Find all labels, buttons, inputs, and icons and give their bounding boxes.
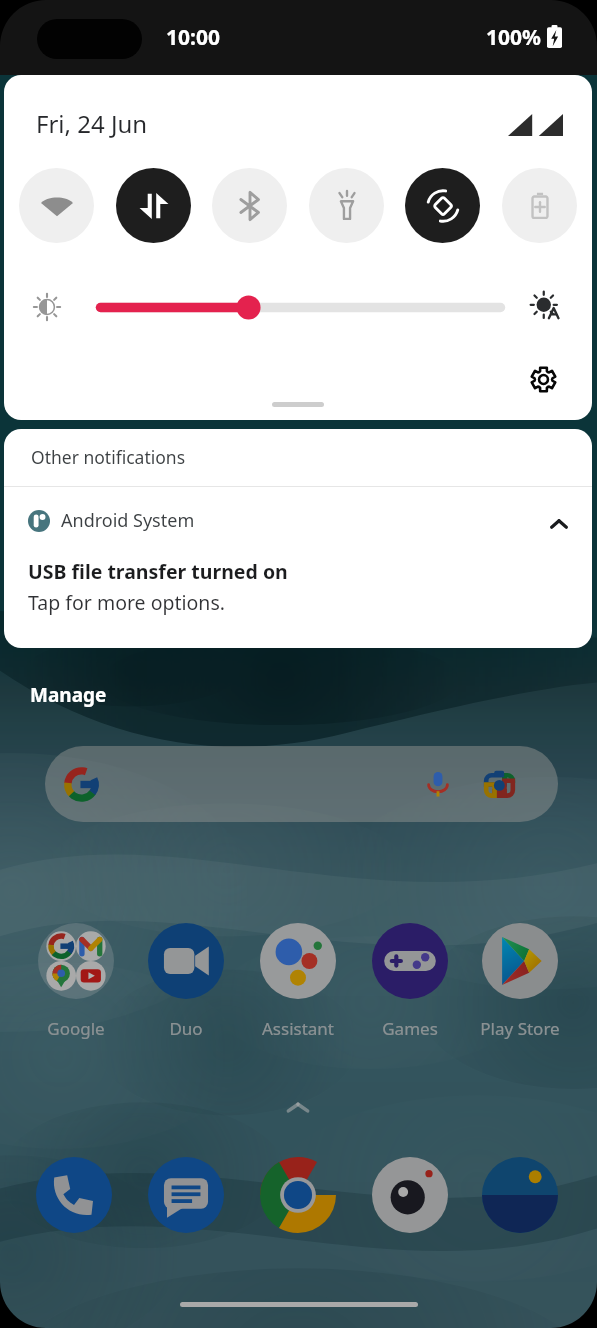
staticText: Tap for more options. xyxy=(28,589,225,616)
staticText: USB file transfer turned on xyxy=(28,558,288,585)
button[interactable]: Google xyxy=(26,923,126,1040)
button[interactable]: Assistant xyxy=(248,923,348,1040)
button[interactable]: Games xyxy=(360,923,460,1040)
staticText: Games xyxy=(382,1017,438,1040)
button[interactable]: Mobile data xyxy=(116,168,191,243)
button[interactable]: Chrome xyxy=(256,1153,340,1237)
button[interactable]: Play Store xyxy=(470,923,570,1040)
staticText: 100% xyxy=(486,23,541,52)
button[interactable]: Collapse xyxy=(543,508,575,540)
staticText: Android System xyxy=(61,508,195,533)
button[interactable]: Android System xyxy=(4,495,592,616)
staticText: 10:00 xyxy=(166,23,220,52)
staticText: Assistant xyxy=(262,1017,334,1040)
button[interactable]: Duo xyxy=(136,923,236,1040)
button[interactable]: Camera xyxy=(368,1153,452,1237)
staticText: Duo xyxy=(169,1017,203,1040)
button[interactable]: Settings xyxy=(525,361,562,398)
button[interactable]: Auto-rotate xyxy=(405,168,480,243)
button[interactable]: Manage xyxy=(30,682,107,708)
staticText: Google xyxy=(47,1017,105,1040)
staticText: Play Store xyxy=(480,1017,560,1040)
button[interactable]: Flashlight xyxy=(309,168,384,243)
button[interactable] xyxy=(45,746,558,822)
button[interactable]: Phone xyxy=(32,1153,116,1237)
button[interactable]: Bluetooth xyxy=(212,168,287,243)
button[interactable]: Battery Saver xyxy=(502,168,577,243)
button[interactable]: Messages xyxy=(144,1153,228,1237)
staticText: Fri, 24 Jun xyxy=(36,107,148,140)
button[interactable]: Gallery xyxy=(478,1153,562,1237)
staticText: Other notifications xyxy=(31,445,186,469)
button[interactable]: Wi-Fi xyxy=(19,168,94,243)
